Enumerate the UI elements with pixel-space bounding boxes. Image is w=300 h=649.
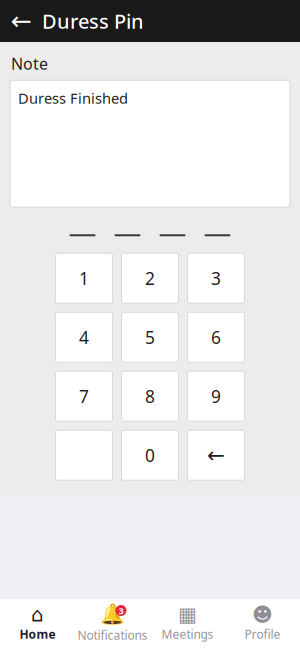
staticText: ⌂ xyxy=(31,603,44,626)
staticText: ▦ xyxy=(178,603,197,626)
button[interactable]: 2 xyxy=(121,253,178,303)
button[interactable]: ▦ xyxy=(150,599,225,649)
button[interactable]: ☻ xyxy=(225,599,300,649)
button[interactable]: 9 xyxy=(187,371,244,421)
button[interactable]: Blank xyxy=(55,430,112,480)
staticText: Duress Finished xyxy=(18,88,128,108)
staticText: 8 xyxy=(145,385,155,408)
button[interactable]: Back xyxy=(0,0,42,42)
staticText: 5 xyxy=(145,326,155,349)
staticText: 1 xyxy=(79,267,89,290)
staticText: 🔔 xyxy=(100,603,125,626)
button[interactable]: 7 xyxy=(55,371,112,421)
staticText: Note xyxy=(11,53,48,74)
staticText: 0 xyxy=(145,444,155,467)
staticText: 3 xyxy=(211,267,221,290)
button[interactable]: 3 xyxy=(187,253,244,303)
button[interactable]: 1 xyxy=(55,253,112,303)
staticText: 3 xyxy=(118,604,123,617)
button[interactable]: 0 xyxy=(121,430,178,480)
staticText: 7 xyxy=(79,385,89,408)
staticText: Profile xyxy=(244,626,280,642)
staticText: 2 xyxy=(145,267,155,290)
button[interactable]: 4 xyxy=(55,312,112,362)
staticText: Meetings xyxy=(161,626,213,642)
staticText: 6 xyxy=(211,326,221,349)
button[interactable]: 6 xyxy=(187,312,244,362)
button[interactable]: ⌂ xyxy=(0,599,75,649)
button[interactable]: Delete xyxy=(187,430,244,480)
staticText: Home xyxy=(19,626,55,642)
staticText: 4 xyxy=(79,326,89,349)
staticText: ☻ xyxy=(252,603,273,626)
button[interactable]: 5 xyxy=(121,312,178,362)
button[interactable]: 8 xyxy=(121,371,178,421)
button[interactable]: 🔔 xyxy=(75,599,150,649)
staticText: Duress Pin xyxy=(42,8,144,34)
staticText: ← xyxy=(10,7,31,35)
staticText: Notifications xyxy=(77,627,147,643)
staticText: 9 xyxy=(211,385,221,408)
staticText: ← xyxy=(207,443,225,467)
